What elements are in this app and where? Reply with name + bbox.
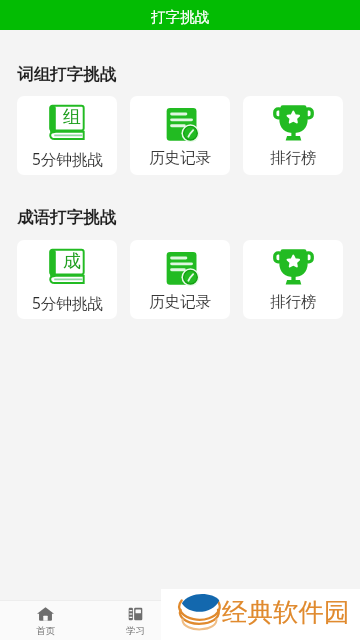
other: 我的 — [307, 607, 324, 621]
other: 挑战 — [217, 607, 234, 621]
staticText: 首页 — [36, 625, 55, 637]
button[interactable]: 历史记录 — [130, 96, 230, 175]
staticText: 排行榜 — [270, 148, 317, 168]
button[interactable]: 组 — [17, 96, 117, 175]
button[interactable]: 成 — [17, 240, 117, 319]
staticText: 学习 — [126, 625, 145, 637]
button[interactable]: 挑战 — [180, 604, 270, 637]
button[interactable]: 排行榜 — [243, 96, 343, 175]
button[interactable]: 我的 — [270, 604, 360, 637]
staticText: 经典软件园 — [222, 596, 350, 628]
staticText: 5分钟挑战 — [32, 148, 103, 169]
staticText: 词组打字挑战 — [17, 64, 116, 85]
staticText: 组 — [63, 106, 81, 129]
staticText: 历史记录 — [149, 148, 211, 168]
button[interactable]: 历史记录 — [130, 240, 230, 319]
button[interactable]: 学习 — [90, 604, 180, 637]
button[interactable]: 排行榜 — [243, 240, 343, 319]
staticText: 排行榜 — [270, 292, 317, 312]
button[interactable]: 首页 — [0, 604, 90, 637]
other: 首页 — [37, 607, 54, 621]
staticText: 打字挑战 — [151, 8, 209, 26]
staticText: 5分钟挑战 — [32, 292, 103, 313]
staticText: 成语打字挑战 — [17, 207, 116, 228]
other: Logo — [178, 591, 221, 631]
other: 学习 — [127, 607, 144, 621]
staticText: 成 — [63, 250, 81, 273]
staticText: 历史记录 — [149, 292, 211, 312]
